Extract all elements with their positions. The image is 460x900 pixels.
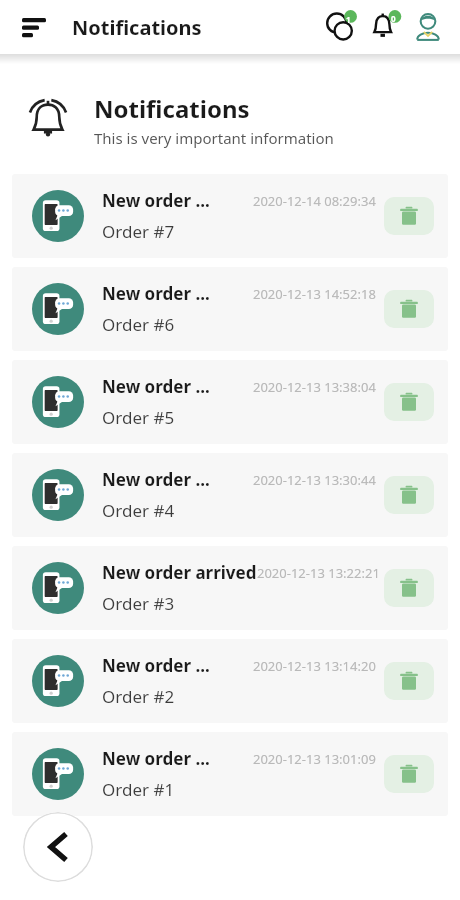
- staticText: 2020-12-14 08:29:34: [253, 192, 376, 210]
- button[interactable]: Delete: [384, 569, 434, 607]
- button[interactable]: New order ...: [12, 360, 448, 444]
- staticText: Order #6: [102, 313, 175, 336]
- button[interactable]: New order ...: [12, 639, 448, 723]
- button[interactable]: New order ...: [12, 453, 448, 537]
- staticText: New order ...: [102, 375, 210, 398]
- button[interactable]: Notifications: [362, 5, 406, 49]
- button[interactable]: Menu: [12, 4, 58, 50]
- staticText: 2020-12-13 13:01:09: [253, 750, 376, 768]
- staticText: Notifications: [94, 92, 250, 125]
- staticText: This is very important information: [94, 128, 334, 148]
- staticText: 2020-12-13 13:22:21: [257, 564, 380, 582]
- staticText: Notifications: [72, 14, 202, 41]
- staticText: New order ...: [102, 189, 210, 212]
- button[interactable]: New order ...: [12, 174, 448, 258]
- button[interactable]: Back: [23, 812, 93, 882]
- staticText: 2020-12-13 13:38:04: [253, 378, 376, 396]
- staticText: New order ...: [102, 747, 210, 770]
- staticText: 2020-12-13 13:30:44: [253, 471, 376, 489]
- button[interactable]: Delete: [384, 383, 434, 421]
- staticText: New order ...: [102, 282, 210, 305]
- staticText: Order #1: [102, 778, 175, 801]
- button[interactable]: New order ...: [12, 732, 448, 816]
- button[interactable]: New order ...: [12, 267, 448, 351]
- button[interactable]: Messages: [318, 5, 362, 49]
- staticText: Order #5: [102, 406, 175, 429]
- button[interactable]: New order arrived: [12, 546, 448, 630]
- staticText: Order #4: [102, 499, 175, 522]
- button[interactable]: Delete: [384, 197, 434, 235]
- staticText: 1: [346, 14, 351, 25]
- staticText: Order #2: [102, 685, 175, 708]
- button[interactable]: Profile: [406, 5, 450, 49]
- staticText: 2020-12-13 14:52:18: [253, 285, 376, 303]
- staticText: New order ...: [102, 654, 210, 677]
- staticText: Order #3: [102, 592, 175, 615]
- staticText: 2020-12-13 13:14:20: [253, 657, 376, 675]
- staticText: 0: [391, 13, 396, 24]
- button[interactable]: Delete: [384, 290, 434, 328]
- staticText: New order ...: [102, 468, 210, 491]
- button[interactable]: Delete: [384, 476, 434, 514]
- button[interactable]: Delete: [384, 662, 434, 700]
- staticText: New order arrived: [102, 561, 257, 584]
- button[interactable]: Delete: [384, 755, 434, 793]
- staticText: Order #7: [102, 220, 175, 243]
